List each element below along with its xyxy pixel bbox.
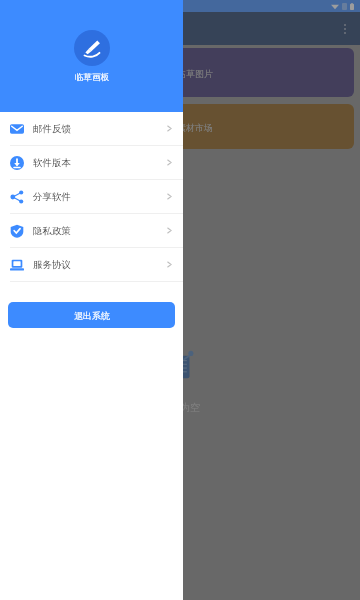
staticText: 分享软件 [33,191,71,203]
button[interactable]: More options [330,14,360,44]
staticText: 软件版本 [33,157,71,169]
button[interactable]: 退出系统 [8,302,175,328]
button[interactable]: 隐私政策 [0,214,183,247]
button[interactable]: 素材市场 [6,104,354,149]
staticText: 临草画板 [75,72,109,83]
button[interactable]: 临草图片 [6,48,354,97]
staticText: 历史为空 [160,401,200,414]
button[interactable]: 软件版本 [0,146,183,179]
staticText: 邮件反馈 [33,123,71,135]
button[interactable]: 服务协议 [0,248,183,281]
staticText: 服务协议 [33,259,71,271]
button[interactable]: 邮件反馈 [0,112,183,145]
staticText: 素材市场 [177,122,213,133]
staticText: 隐私政策 [33,225,71,237]
button[interactable]: 分享软件 [0,180,183,213]
staticText: 退出系统 [74,310,110,321]
staticText: 临草图片 [177,68,213,79]
